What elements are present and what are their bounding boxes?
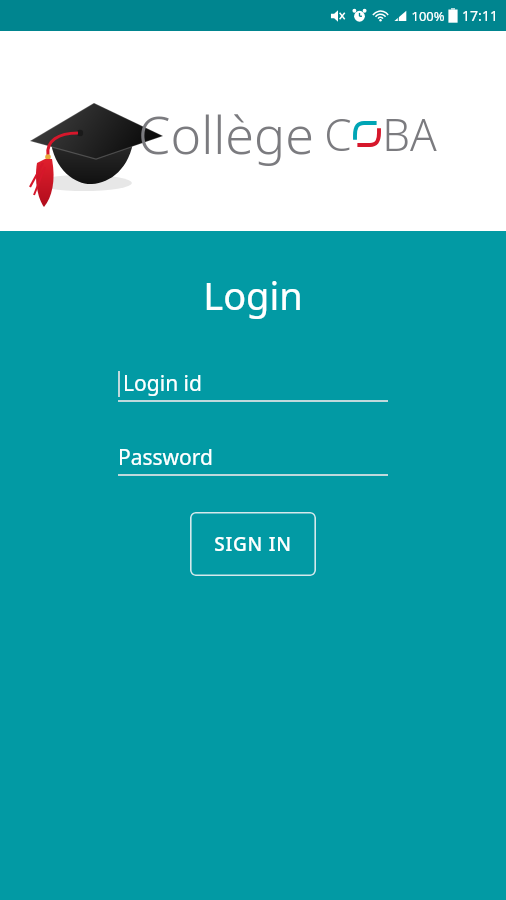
- button[interactable]: Login id: [118, 368, 388, 402]
- button[interactable]: Password: [118, 442, 388, 476]
- staticText: Login id: [123, 369, 202, 398]
- staticText: 17:11: [462, 6, 498, 25]
- staticText: SIGN IN: [214, 531, 292, 557]
- staticText: Password: [118, 443, 213, 472]
- staticText: Login: [203, 269, 303, 321]
- staticText: 100%: [411, 7, 445, 25]
- staticText: Collège: [138, 98, 314, 169]
- staticText: C: [324, 104, 352, 164]
- button[interactable]: SIGN IN: [190, 512, 316, 576]
- staticText: BA: [382, 104, 437, 164]
